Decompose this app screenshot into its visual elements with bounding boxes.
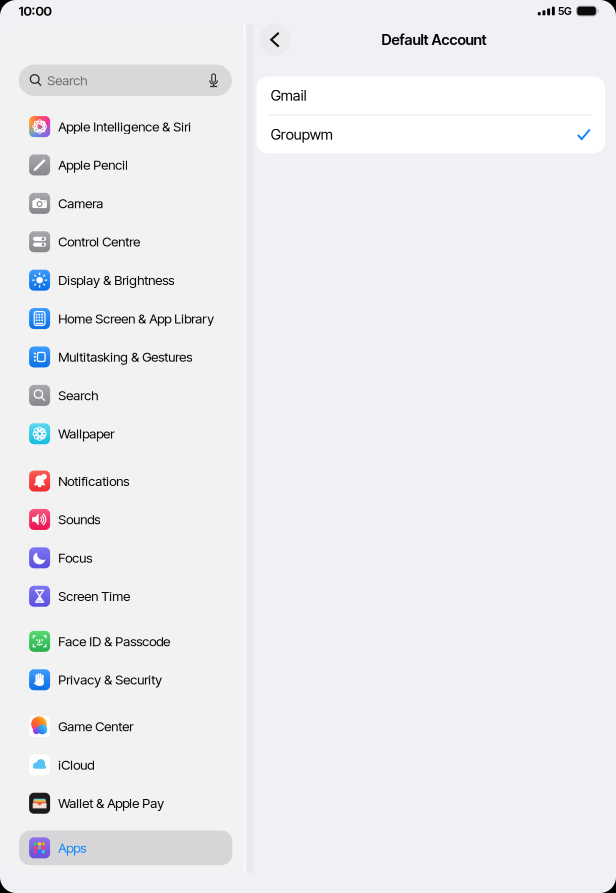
button[interactable]: Multitasking & Gestures [8, 340, 244, 374]
staticText: iCloud [58, 757, 94, 773]
staticText: Apps [58, 840, 86, 856]
staticText: Multitasking & Gestures [58, 349, 192, 365]
staticText: Face ID & Passcode [58, 633, 170, 649]
staticText: Focus [58, 550, 92, 566]
button[interactable]: Wallet & Apple Pay [8, 786, 244, 821]
staticText: Wallet & Apple Pay [58, 795, 164, 811]
button[interactable]: Game Center [8, 709, 244, 744]
button[interactable]: Apple Intelligence & Siri [8, 109, 244, 144]
button[interactable]: Groupwm [257, 115, 605, 153]
staticText: Display & Brightness [58, 272, 174, 288]
staticText: 10:00 [19, 3, 52, 19]
staticText: 5G [558, 5, 572, 17]
staticText: Privacy & Security [58, 672, 162, 688]
button[interactable]: iCloud [8, 747, 244, 782]
button[interactable]: Search [8, 378, 244, 413]
button[interactable]: Apple Pencil [8, 148, 244, 182]
staticText: Groupwm [271, 126, 333, 143]
staticText: Apple Pencil [58, 157, 128, 173]
button[interactable]: Sounds [8, 502, 244, 537]
button[interactable]: Search [8, 65, 244, 96]
button[interactable]: Screen Time [8, 579, 244, 614]
staticText: Sounds [58, 512, 100, 527]
staticText: Default Account [381, 31, 486, 48]
staticText: Search [47, 72, 87, 88]
staticText: Apple Intelligence & Siri [58, 119, 191, 134]
button[interactable]: Display & Brightness [8, 263, 244, 297]
staticText: Camera [58, 195, 103, 211]
staticText: Gmail [271, 87, 307, 104]
staticText: Control Centre [58, 234, 140, 250]
button[interactable]: Camera [8, 186, 244, 221]
button[interactable]: Gmail [257, 76, 605, 114]
button[interactable]: Privacy & Security [8, 662, 244, 697]
staticText: Search [58, 387, 98, 403]
button[interactable]: Home Screen & App Library [8, 301, 244, 336]
button[interactable]: Notifications [8, 464, 244, 498]
button[interactable]: Wallpaper [8, 416, 244, 451]
staticText: Game Center [58, 719, 133, 734]
staticText: Screen Time [58, 588, 130, 604]
button[interactable]: Back [253, 18, 297, 62]
staticText: Wallpaper [58, 426, 114, 442]
button[interactable]: Face ID & Passcode [8, 624, 244, 659]
button[interactable]: Apps [8, 830, 244, 865]
staticText: Notifications [58, 473, 129, 489]
button[interactable]: Focus [8, 540, 244, 575]
staticText: Home Screen & App Library [58, 311, 214, 326]
button[interactable]: Control Centre [8, 224, 244, 259]
